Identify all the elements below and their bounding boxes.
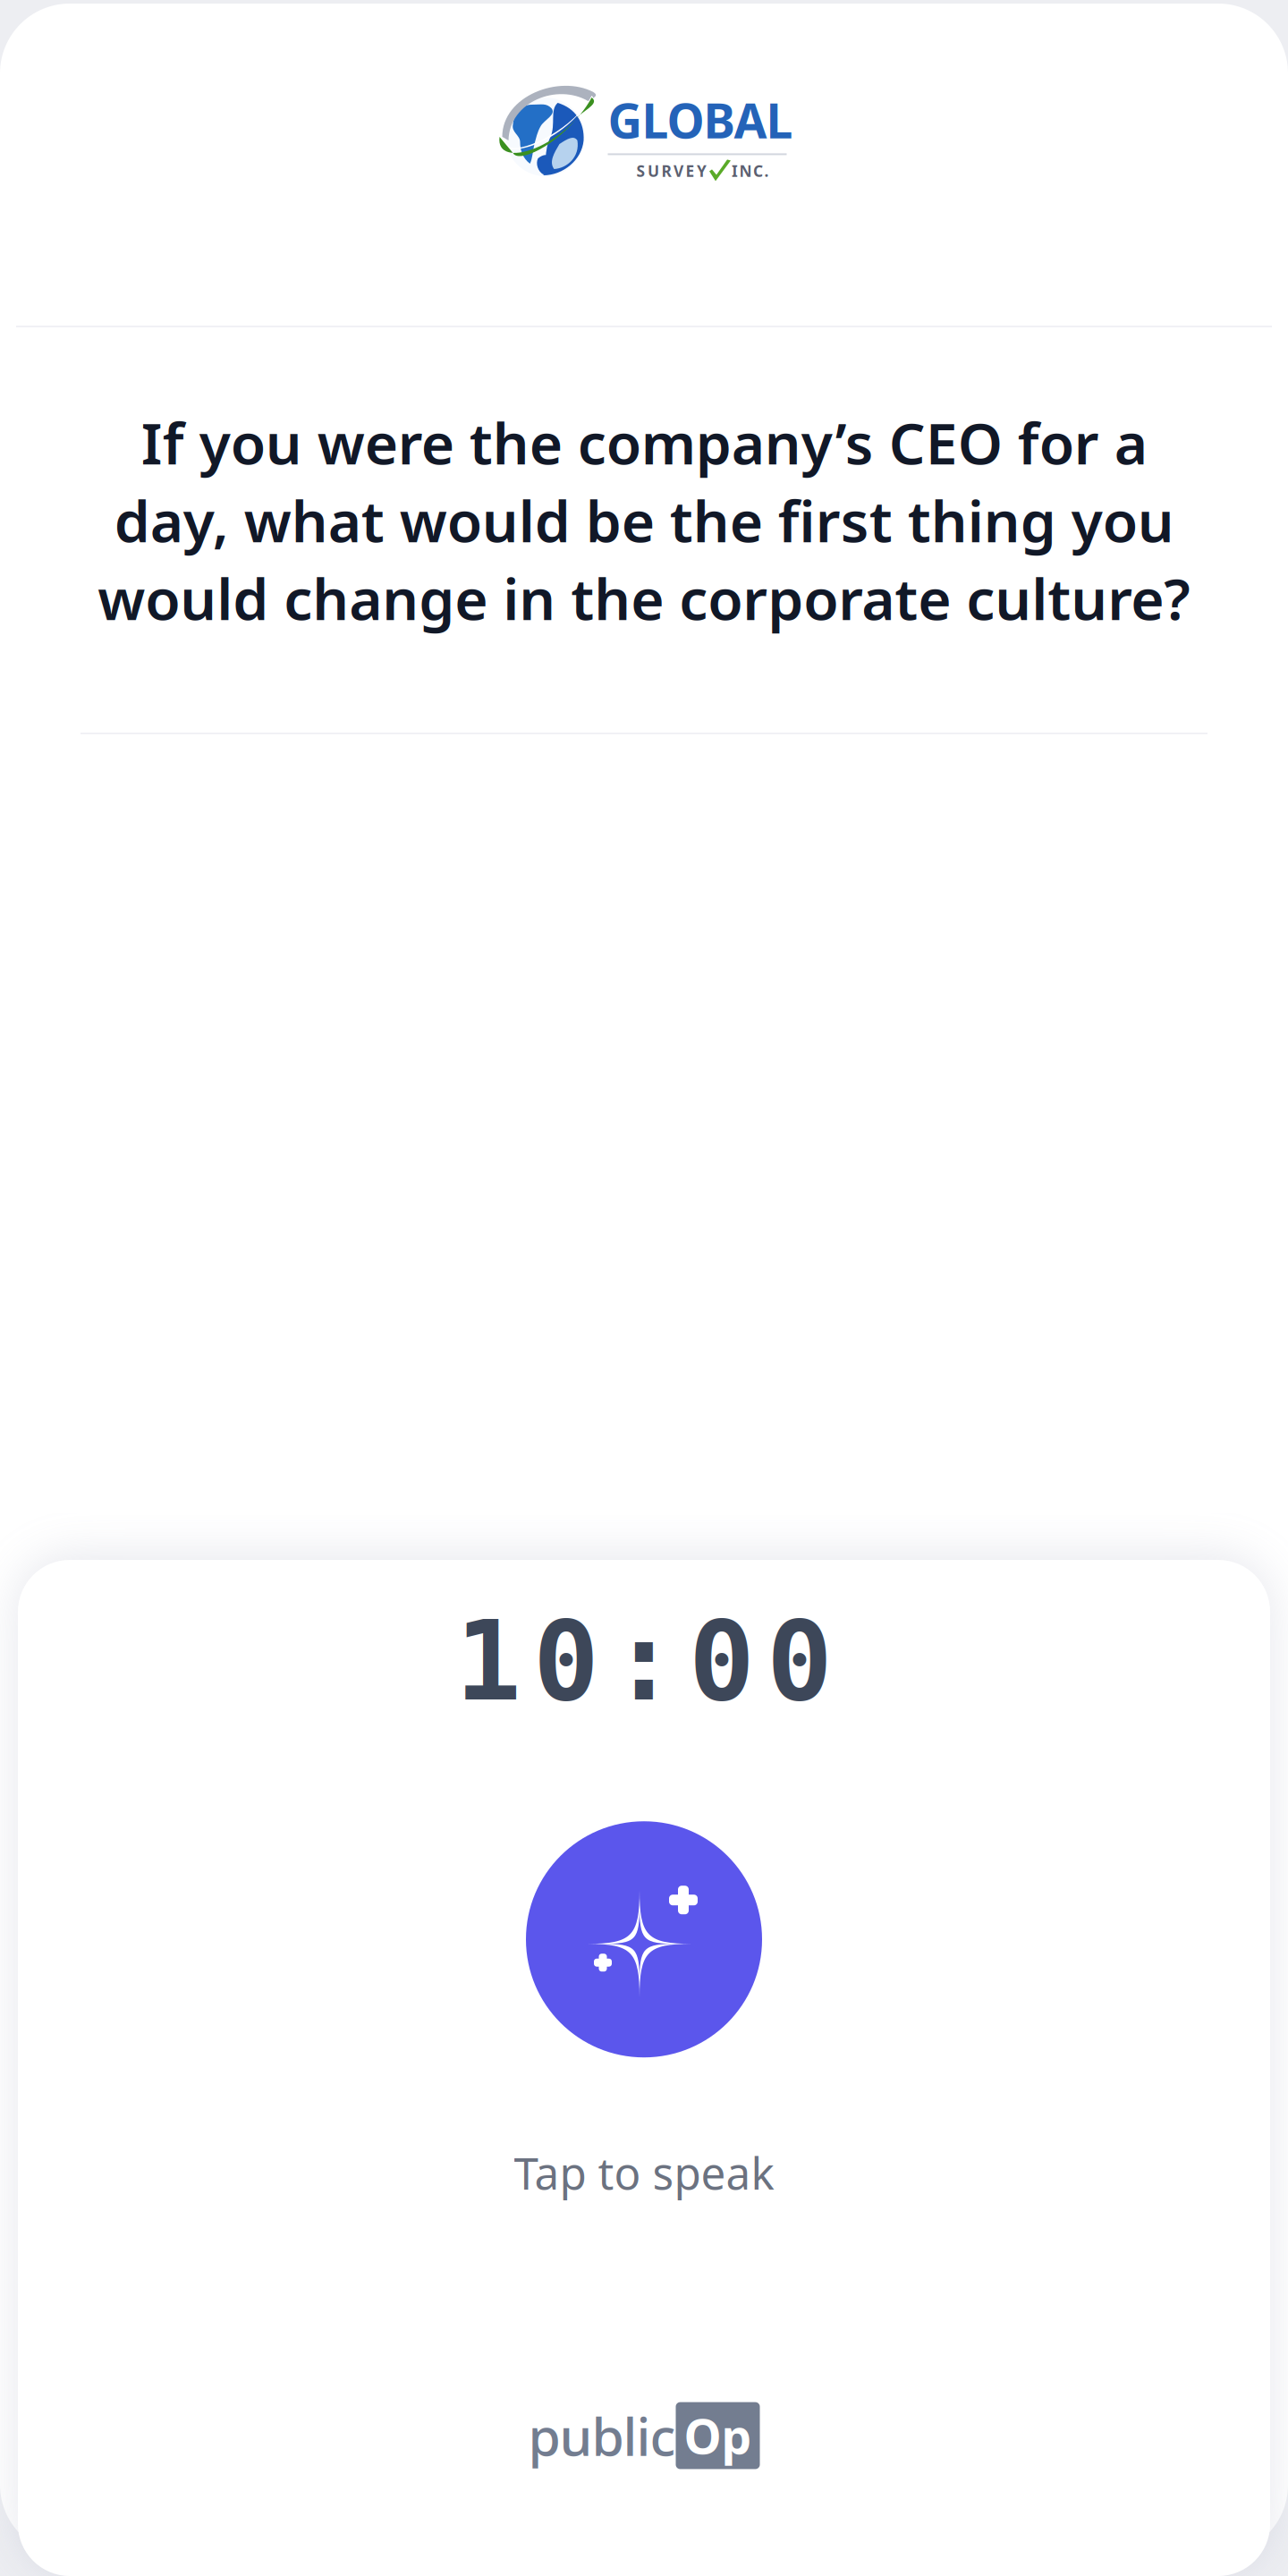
staticText: Tap to speak — [514, 2143, 774, 2202]
button[interactable]: Tap to speak — [526, 1821, 762, 2057]
staticText: GLOBAL — [608, 88, 793, 152]
staticText: If you were the company’s CEO for a day,… — [97, 404, 1191, 636]
staticText: 10:00 — [455, 1599, 833, 1724]
staticText: public — [528, 2401, 676, 2470]
staticText: SURVEY — [636, 160, 707, 181]
staticText: INC. — [732, 160, 769, 181]
staticText: Op — [684, 2404, 752, 2467]
